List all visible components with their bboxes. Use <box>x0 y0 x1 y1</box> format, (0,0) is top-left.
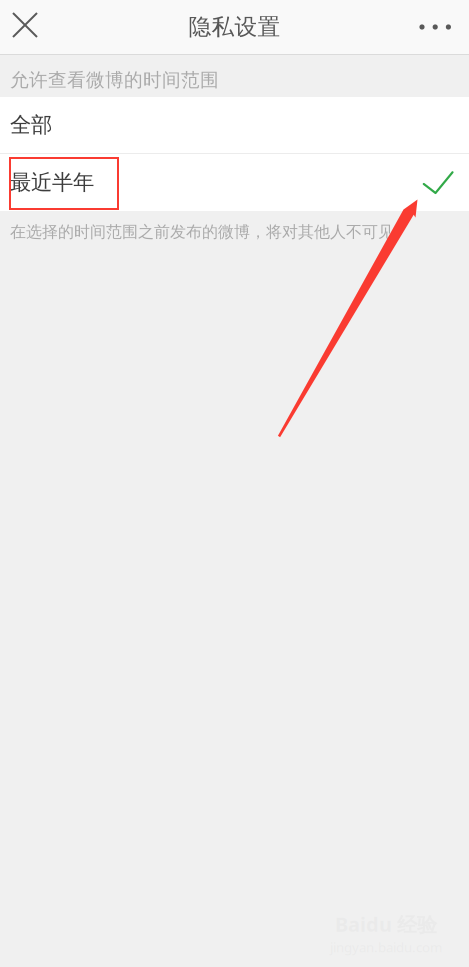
staticText: 最近半年 <box>10 169 94 196</box>
button[interactable]: 全部 <box>0 97 469 153</box>
staticText: 允许查看微博的时间范围 <box>10 68 219 91</box>
staticText: 在选择的时间范围之前发布的微博，将对其他人不可见 <box>10 222 394 242</box>
button[interactable]: More options <box>405 0 469 54</box>
button[interactable]: Close <box>0 0 52 54</box>
button[interactable]: 最近半年 <box>0 154 469 211</box>
staticText: 全部 <box>10 112 52 138</box>
staticText: 隐私设置 <box>188 13 280 41</box>
